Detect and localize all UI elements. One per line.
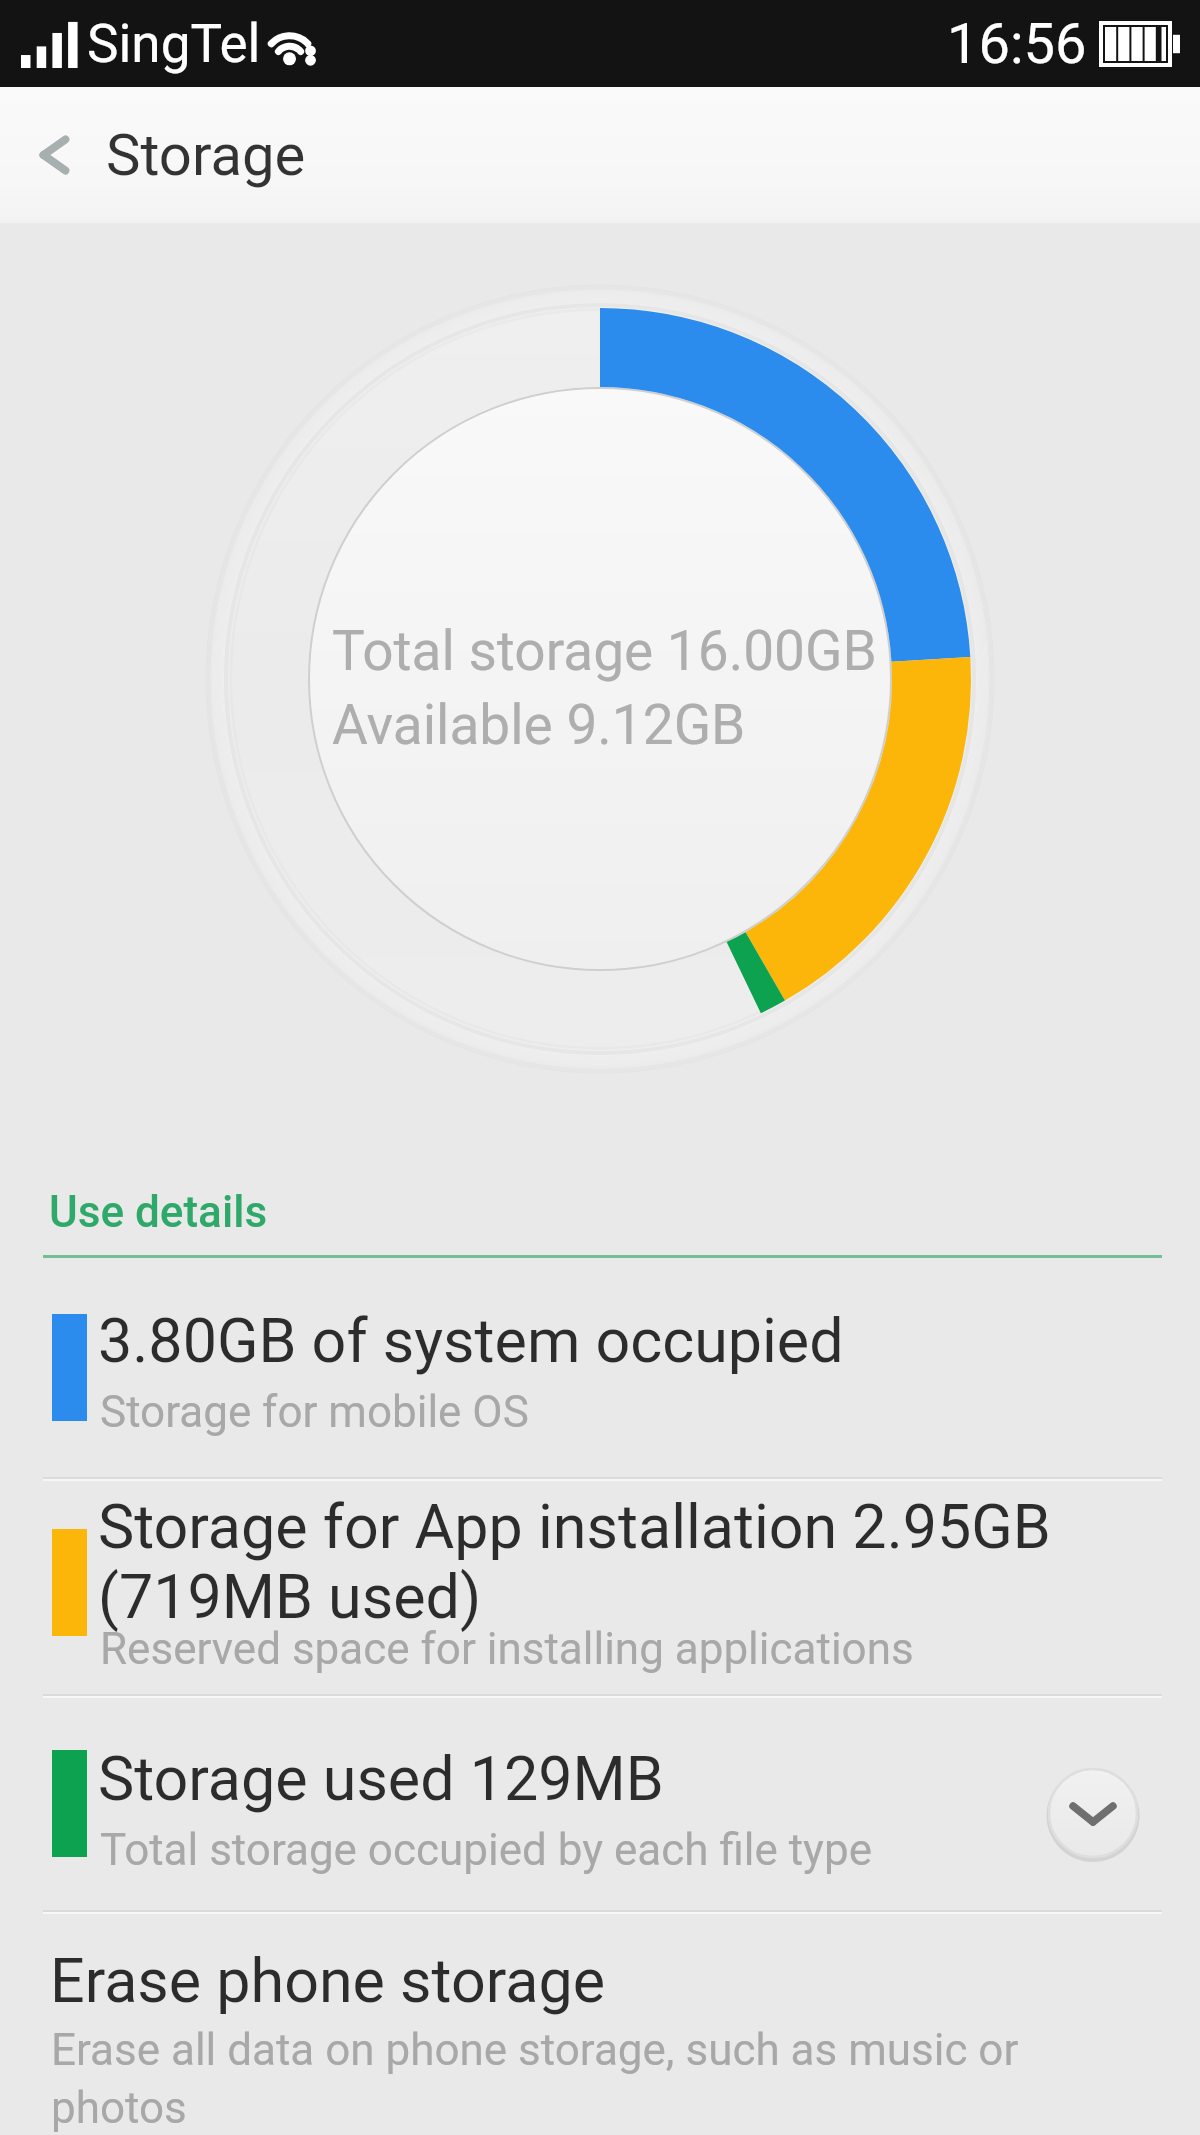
staticText: Storage (106, 121, 306, 189)
staticText: Erase phone storage (50, 1945, 605, 2016)
staticText: Erase all data on phone storage, such as… (51, 2024, 1019, 2134)
staticText: Storage for mobile OS (100, 1386, 529, 1438)
staticText: SingTel (87, 13, 261, 75)
button[interactable]: Back (10, 87, 96, 223)
staticText: Total storage 16.00GB (332, 619, 877, 683)
staticText: Total storage occupied by each file type (100, 1824, 872, 1876)
staticText: Storage used 129MB (98, 1743, 664, 1814)
button[interactable]: Expand (1044, 1764, 1142, 1862)
staticText: (719MB used) (98, 1561, 482, 1632)
button[interactable]: 3.80GB of system occupied (0, 1282, 1200, 1477)
staticText: 3.80GB of system occupied (98, 1305, 844, 1376)
staticText: Use details (49, 1186, 268, 1238)
button[interactable]: Storage used 129MB (0, 1696, 1200, 1910)
staticText: Reserved space for installing applicatio… (100, 1623, 914, 1675)
button[interactable]: Storage for App installation 2.95GB (0, 1479, 1200, 1694)
staticText: Storage for App installation 2.95GB (98, 1491, 1051, 1562)
button[interactable]: Erase phone storage (0, 1912, 1200, 2135)
staticText: Available 9.12GB (332, 693, 746, 757)
staticText: 16:56 (947, 11, 1087, 77)
